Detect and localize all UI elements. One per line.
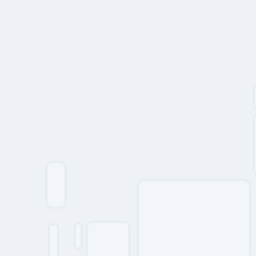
button[interactable]: Recents xyxy=(74,222,83,249)
button[interactable]: More xyxy=(253,82,256,111)
button[interactable]: Playlists xyxy=(86,221,130,256)
button[interactable]: Browse xyxy=(253,112,256,176)
button[interactable]: Now playing xyxy=(45,161,66,208)
button[interactable]: Library xyxy=(48,223,59,256)
